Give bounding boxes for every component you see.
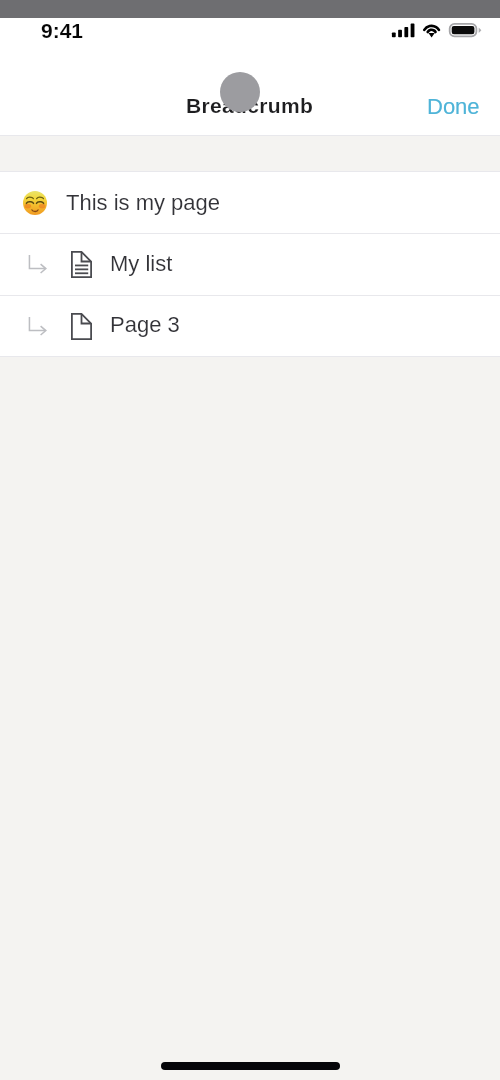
other: Home indicator [161, 1062, 340, 1070]
button[interactable]: Breadcrumb [150, 84, 350, 124]
button[interactable]: Relieved face emoji [0, 172, 500, 233]
button[interactable]: My list [0, 234, 500, 295]
staticText: My list [110, 251, 173, 276]
staticText: Page 3 [110, 312, 180, 337]
other: Cellular signal, Wi-Fi and battery statu… [388, 20, 484, 40]
button[interactable]: Done [407, 82, 500, 131]
button[interactable]: Page 3 [0, 296, 500, 356]
staticText: Done [427, 94, 480, 119]
staticText: Breadcrumb [186, 94, 314, 117]
other: Relieved face emoji [23, 191, 47, 215]
staticText: This is my page [66, 190, 221, 215]
staticText: 9:41 [41, 19, 84, 42]
